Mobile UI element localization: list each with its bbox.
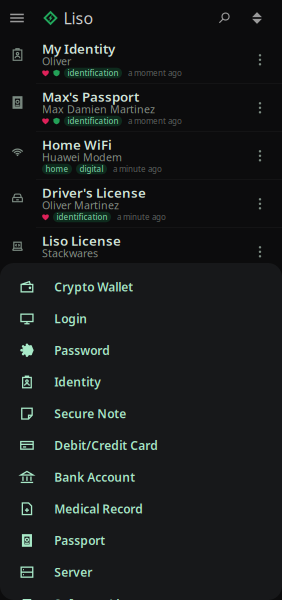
staticText: home	[45, 164, 68, 174]
button[interactable]: Password	[0, 334, 282, 366]
staticText: Software License	[54, 596, 153, 600]
staticText: Debit/Credit Card	[54, 437, 158, 453]
button[interactable]: Passport	[0, 525, 282, 556]
button[interactable]: Bank Account	[0, 461, 282, 493]
staticText: Driver's License	[42, 184, 146, 201]
button[interactable]: Medical Record	[0, 493, 282, 525]
button[interactable]: Server	[0, 556, 282, 588]
button[interactable]: Driver's License	[0, 180, 282, 228]
staticText: Identity	[54, 374, 101, 390]
button[interactable]: Home WiFi	[0, 132, 282, 180]
button[interactable]: Secure Note	[0, 398, 282, 429]
staticText: Oliver Martinez	[42, 198, 119, 212]
staticText: Secure Note	[54, 406, 126, 422]
button[interactable]: Login	[0, 303, 282, 334]
button[interactable]: Menu	[5, 0, 29, 36]
button[interactable]: Crypto Wallet	[0, 271, 282, 303]
button[interactable]: Debit/Credit Card	[0, 429, 282, 461]
staticText: Passport	[54, 532, 105, 548]
button[interactable]: Sort	[242, 0, 272, 36]
staticText: Server	[54, 564, 92, 580]
staticText: a moment ago	[128, 68, 182, 78]
button[interactable]: Search	[206, 0, 242, 36]
button[interactable]: Liso License	[0, 228, 282, 276]
staticText: Liso License	[42, 232, 121, 249]
staticText: Max's Passport	[42, 88, 139, 105]
staticText: identification	[67, 68, 118, 78]
button[interactable]: Identity	[0, 366, 282, 398]
staticText: identification	[67, 116, 118, 126]
staticText: Liso	[63, 7, 93, 29]
staticText: Medical Record	[54, 501, 143, 517]
staticText: Max Damien Martinez	[42, 102, 155, 116]
staticText: a moment ago	[128, 116, 182, 126]
button[interactable]: My Identity	[0, 36, 282, 84]
staticText: Password	[54, 342, 110, 358]
staticText: My Identity	[42, 40, 115, 57]
staticText: Crypto Wallet	[54, 279, 133, 295]
staticText: identification	[56, 212, 107, 222]
button[interactable]: Software License	[0, 588, 282, 600]
button[interactable]: Max's Passport	[0, 84, 282, 132]
staticText: a minute ago	[117, 212, 166, 222]
staticText: Bank Account	[54, 469, 135, 485]
staticText: Login	[54, 311, 87, 326]
staticText: Stackwares	[42, 246, 98, 260]
staticText: Huawei Modem	[42, 150, 122, 164]
staticText: Oliver	[42, 54, 71, 68]
staticText: digital	[79, 164, 103, 174]
staticText: a minute ago	[113, 164, 162, 174]
staticText: Home WiFi	[42, 136, 112, 153]
